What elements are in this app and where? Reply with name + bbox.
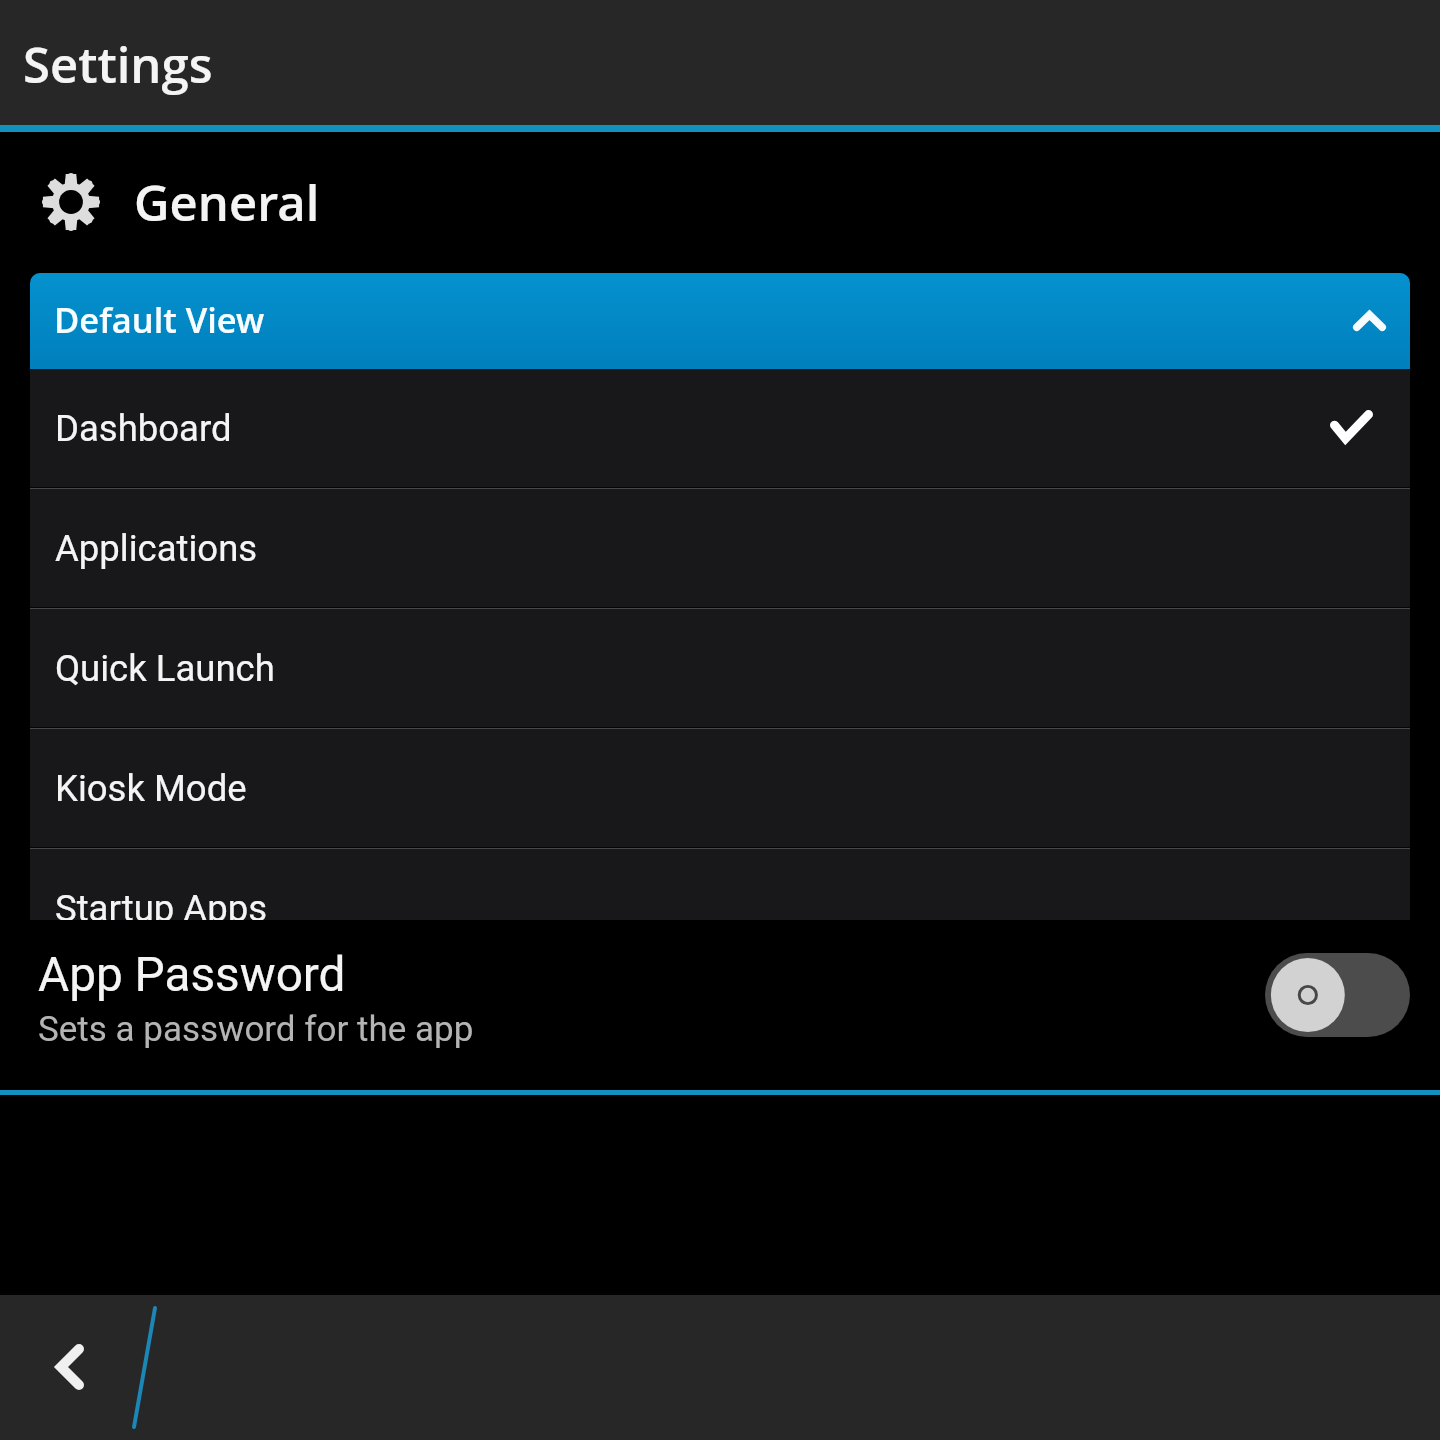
staticText: Dashboard bbox=[55, 407, 232, 450]
staticText: General bbox=[134, 169, 320, 236]
button[interactable]: Back bbox=[15, 1312, 125, 1422]
staticText: Quick Launch bbox=[55, 647, 275, 690]
button[interactable]: Startup Apps bbox=[30, 849, 1410, 920]
staticText: Startup Apps bbox=[55, 887, 267, 920]
button[interactable]: Settings bbox=[0, 0, 1440, 125]
button[interactable]: Applications bbox=[30, 489, 1410, 607]
button[interactable]: App password toggle bbox=[1265, 953, 1410, 1037]
staticText: Sets a password for the app bbox=[38, 1009, 474, 1050]
staticText: App Password bbox=[38, 947, 346, 1003]
button[interactable]: Dashboard bbox=[30, 369, 1410, 487]
staticText: Settings bbox=[23, 31, 213, 98]
staticText: Applications bbox=[55, 527, 258, 570]
button[interactable]: Default View bbox=[30, 273, 1410, 369]
staticText: Default View bbox=[54, 296, 265, 343]
button[interactable]: Kiosk Mode bbox=[30, 729, 1410, 847]
staticText: Kiosk Mode bbox=[55, 767, 247, 810]
button[interactable]: Quick Launch bbox=[30, 609, 1410, 727]
button[interactable]: App Password bbox=[0, 920, 1440, 1090]
